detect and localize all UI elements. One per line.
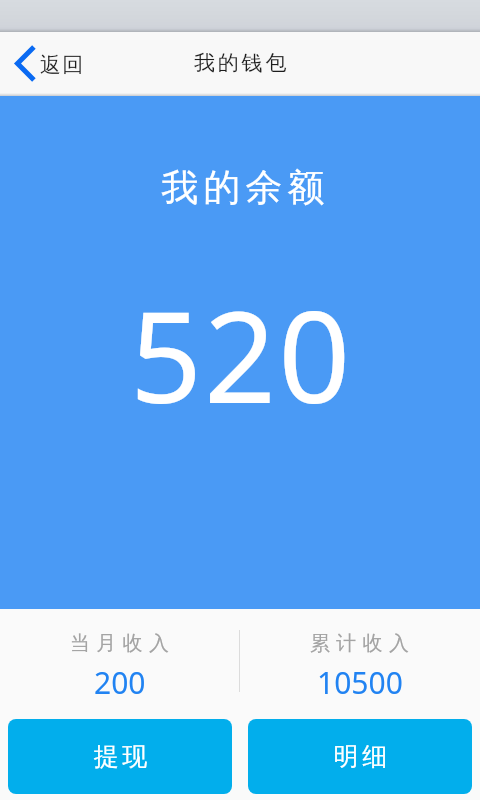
button[interactable]: 返回 — [0, 32, 99, 96]
button[interactable]: 累计收入 — [240, 609, 480, 703]
staticText: 我的余额 — [159, 164, 327, 211]
staticText: 提现 — [92, 741, 149, 772]
staticText: 10500 — [317, 662, 403, 703]
staticText: 我的钱包 — [194, 50, 290, 76]
staticText: 返回 — [40, 52, 85, 78]
button[interactable]: 提现 — [8, 719, 232, 794]
staticText: 520 — [130, 268, 353, 440]
staticText: 明细 — [332, 741, 389, 772]
staticText: 累计收入 — [310, 631, 416, 656]
button[interactable]: 当月收入 — [0, 609, 240, 703]
staticText: 200 — [94, 662, 146, 703]
button[interactable]: 明细 — [248, 719, 472, 794]
staticText: 当月收入 — [70, 631, 176, 656]
